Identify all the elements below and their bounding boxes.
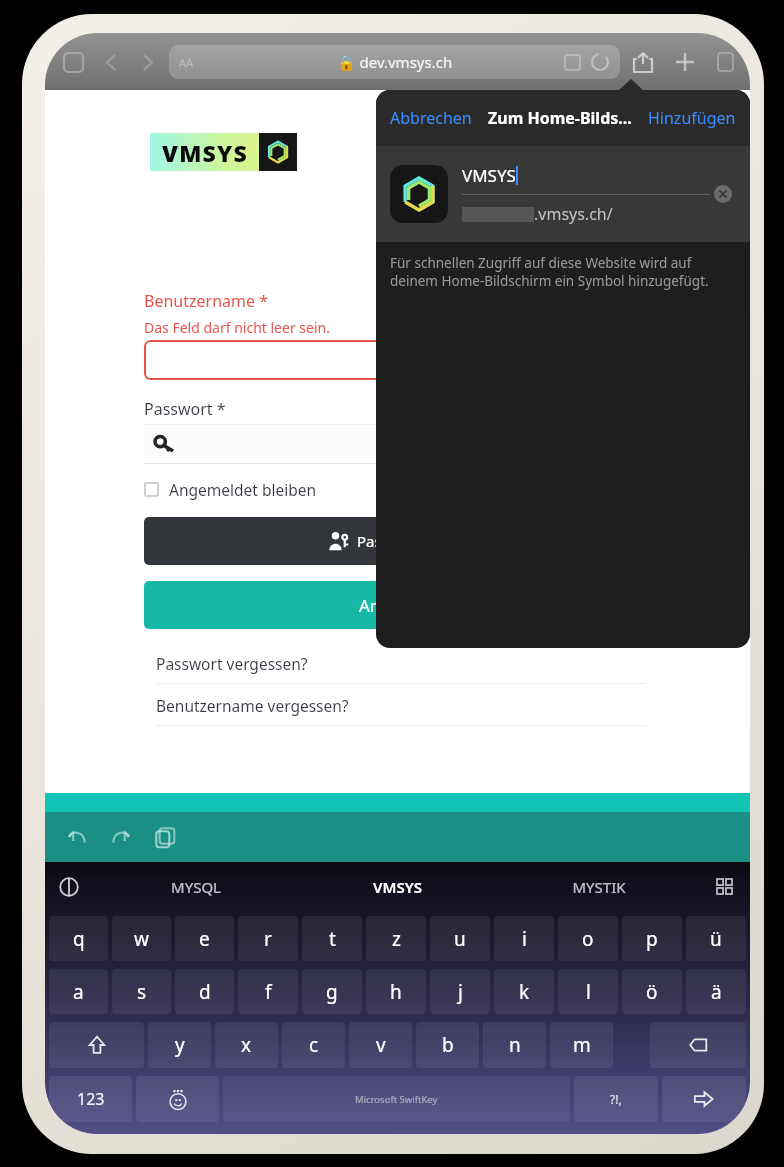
- button[interactable]: e: [175, 916, 234, 961]
- button[interactable]: Passwort setzen: [144, 517, 656, 565]
- button[interactable]: n: [483, 1022, 546, 1068]
- staticText: ä: [711, 979, 722, 1005]
- button[interactable]: MYSQL: [95, 862, 296, 912]
- staticText: b: [442, 1032, 454, 1058]
- staticText: Passwort vergessen?: [156, 653, 308, 674]
- button[interactable]: 🔒 dev.vmsys.ch: [169, 45, 620, 79]
- button[interactable]: Extensions: [558, 48, 586, 76]
- button[interactable]: Enter: [662, 1076, 746, 1122]
- staticText: VMSYS: [462, 164, 516, 187]
- button[interactable]: o: [558, 916, 618, 961]
- button[interactable]: t: [302, 916, 362, 961]
- staticText: MYSQL: [171, 877, 221, 897]
- staticText: VMSYS: [373, 877, 422, 897]
- button[interactable]: MYSTIK: [498, 862, 700, 912]
- staticText: v: [376, 1032, 386, 1058]
- button[interactable]: Tabs overview: [53, 42, 93, 82]
- button[interactable]: m: [550, 1022, 613, 1068]
- button[interactable]: VMSYS: [296, 862, 498, 912]
- button[interactable]: Abbrechen: [388, 105, 474, 131]
- staticText: g: [326, 979, 338, 1005]
- button[interactable]: l: [558, 969, 618, 1014]
- button[interactable]: Reload: [586, 48, 614, 76]
- button[interactable]: a: [49, 969, 108, 1014]
- button[interactable]: Clear text: [710, 181, 736, 207]
- button[interactable]: Hinzufügen: [646, 105, 738, 131]
- staticText: e: [199, 926, 210, 952]
- button[interactable]: z: [366, 916, 426, 961]
- staticText: .vmsys.ch/: [534, 203, 613, 225]
- button[interactable]: u: [430, 916, 490, 961]
- button[interactable]: Share: [622, 41, 664, 83]
- staticText: Das Feld darf nicht leer sein.: [144, 318, 330, 337]
- button[interactable]: d: [175, 969, 234, 1014]
- button[interactable]: r: [238, 916, 298, 961]
- button[interactable]: Shift: [49, 1022, 144, 1068]
- button[interactable]: c: [282, 1022, 345, 1068]
- button[interactable]: q: [49, 916, 108, 961]
- staticText: h: [390, 979, 402, 1005]
- button[interactable]: Backspace: [650, 1022, 746, 1068]
- staticText: Microsoft SwiftKey: [355, 1093, 438, 1106]
- button[interactable]: p: [622, 916, 682, 961]
- button[interactable]: Passwort vergessen?: [156, 642, 646, 684]
- button[interactable]: Forward: [129, 44, 165, 80]
- button[interactable]: Back: [93, 44, 129, 80]
- staticText: AA: [179, 55, 194, 70]
- staticText: d: [199, 979, 211, 1005]
- button[interactable]: j: [430, 969, 490, 1014]
- button[interactable]: y: [148, 1022, 211, 1068]
- staticText: y: [175, 1032, 185, 1058]
- staticText: i: [522, 926, 527, 952]
- button[interactable]: Tabs: [706, 44, 742, 80]
- button[interactable]: Anmelden: [144, 581, 656, 629]
- staticText: Für schnellen Zugriff auf diese Website …: [390, 254, 736, 290]
- button[interactable]: Clipboard: [143, 815, 187, 859]
- button[interactable]: b: [416, 1022, 479, 1068]
- staticText: u: [454, 926, 466, 952]
- button[interactable]: k: [494, 969, 554, 1014]
- button[interactable]: ö: [622, 969, 682, 1014]
- staticText: Hinzufügen: [648, 107, 736, 129]
- button[interactable]: Undo: [55, 815, 99, 859]
- button[interactable]: 123: [49, 1076, 132, 1122]
- button[interactable]: h: [366, 969, 426, 1014]
- staticText: m: [573, 1032, 591, 1058]
- button[interactable]: SwiftKey menu: [53, 870, 87, 904]
- button[interactable]: f: [238, 969, 298, 1014]
- staticText: w: [134, 926, 149, 952]
- staticText: Anmelden: [359, 594, 441, 617]
- button[interactable]: Space: [223, 1076, 570, 1122]
- staticText: 123: [77, 1088, 105, 1110]
- button[interactable]: w: [112, 916, 171, 961]
- button[interactable]: Benutzername vergessen?: [156, 684, 646, 726]
- staticText: p: [646, 926, 658, 952]
- staticText: q: [73, 926, 85, 952]
- staticText: r: [264, 926, 272, 952]
- button[interactable]: Redo: [99, 815, 143, 859]
- staticText: c: [309, 1032, 319, 1058]
- staticText: f: [265, 979, 272, 1005]
- staticText: n: [509, 1032, 521, 1058]
- staticText: Benutzername *: [144, 290, 268, 312]
- button[interactable]: i: [494, 916, 554, 961]
- staticText: Zum Home-Bilds...: [488, 107, 632, 129]
- button[interactable]: ä: [686, 969, 746, 1014]
- button[interactable]: Emoji: [136, 1076, 219, 1122]
- button[interactable]: Keyboard layout: [700, 862, 750, 912]
- button[interactable]: ?!,: [574, 1076, 658, 1122]
- staticText: VMSYS: [162, 137, 249, 168]
- button[interactable]: New tab: [664, 41, 706, 83]
- staticText: Passwort *: [144, 398, 226, 420]
- button[interactable]: [144, 340, 656, 380]
- button[interactable]: x: [215, 1022, 278, 1068]
- button[interactable]: g: [302, 969, 362, 1014]
- button[interactable]: ü: [686, 916, 746, 961]
- button[interactable]: v: [349, 1022, 412, 1068]
- button[interactable]: Angemeldet bleiben: [144, 476, 317, 502]
- staticText: a: [73, 979, 84, 1005]
- button[interactable]: [144, 424, 656, 464]
- button[interactable]: s: [112, 969, 171, 1014]
- staticText: s: [137, 979, 147, 1005]
- staticText: Abbrechen: [390, 107, 472, 129]
